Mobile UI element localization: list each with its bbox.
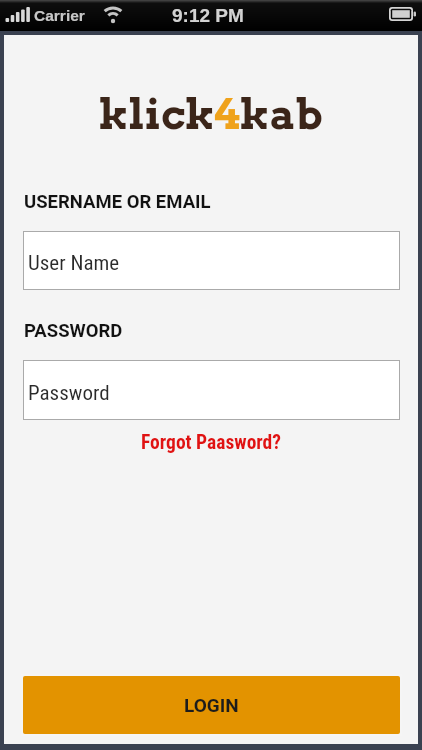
staticText: User Name	[28, 251, 120, 276]
staticText: Password	[28, 381, 110, 406]
staticText: PASSWORD	[24, 320, 123, 342]
staticText: USERNAME OR EMAIL	[24, 191, 211, 213]
button[interactable]: Forgot Paasword?	[141, 431, 282, 454]
staticText: LOGIN	[184, 694, 239, 716]
staticText: klick4kab	[99, 89, 323, 140]
staticText: Carrier	[34, 7, 85, 24]
staticText: Forgot Paasword?	[141, 431, 282, 454]
button[interactable]: User Name	[23, 231, 400, 290]
button[interactable]: LOGIN	[21, 674, 402, 736]
staticText: 9:12 PM	[172, 5, 244, 26]
button[interactable]: Password	[23, 360, 400, 420]
